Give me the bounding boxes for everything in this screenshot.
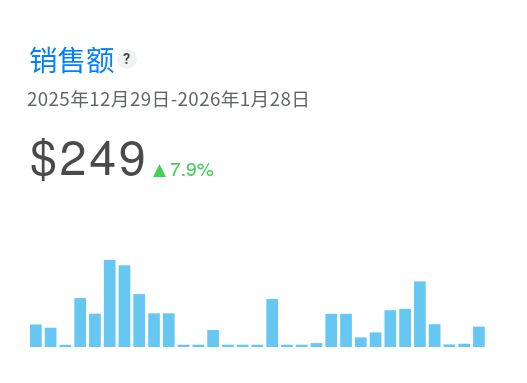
other: Daily sales bar chart — [0, 0, 527, 383]
button[interactable]: 销售额 — [0, 0, 527, 383]
button[interactable]: 销售额 — [29, 38, 115, 79]
staticText: ? — [123, 51, 131, 68]
button[interactable]: Help, about sales amount — [117, 49, 137, 69]
button[interactable]: 2025年12月29日-2026年1月28日 — [27, 84, 311, 111]
staticText: $249 — [30, 119, 149, 188]
other: Trending up — [153, 164, 166, 177]
staticText: 7.9% — [170, 154, 214, 181]
